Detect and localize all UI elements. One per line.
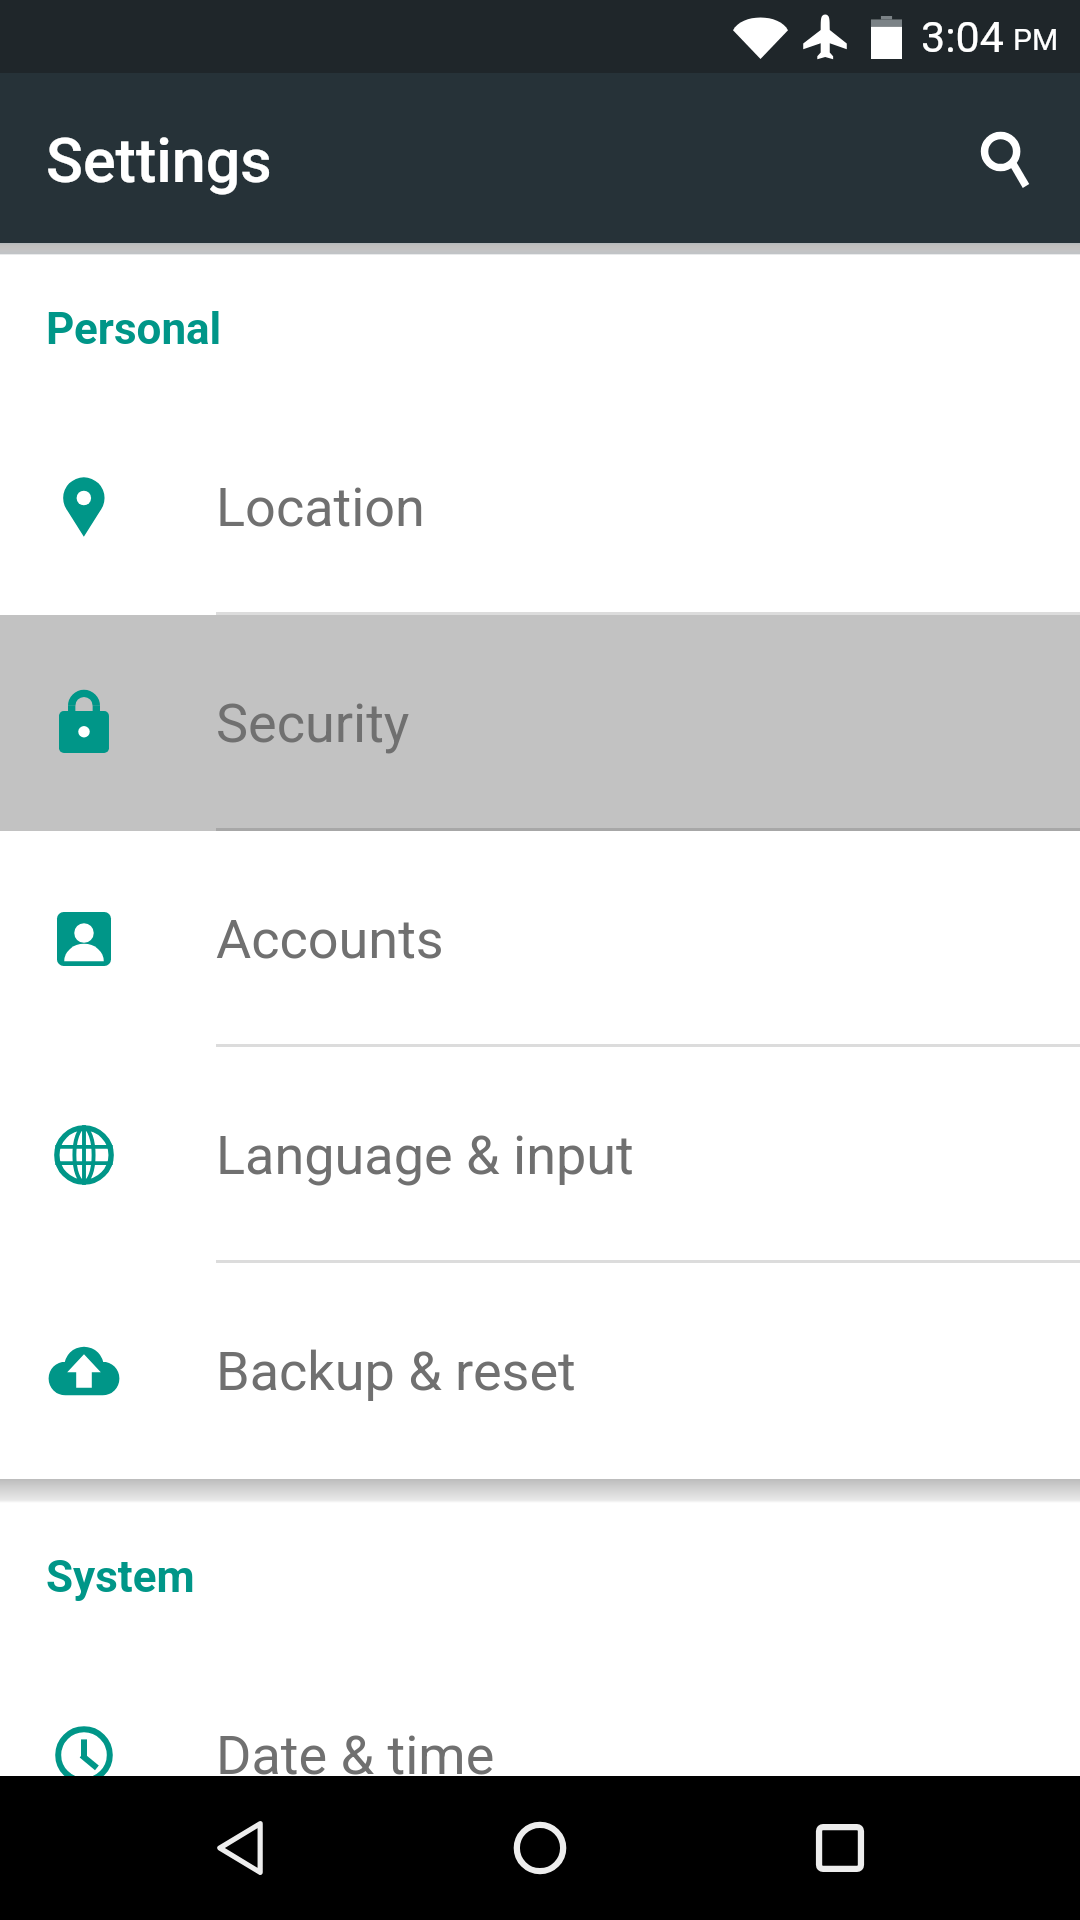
staticText: Accounts [216, 908, 444, 971]
staticText: Personal [46, 303, 222, 355]
button[interactable]: Backup & reset [0, 1263, 1080, 1479]
staticText: 3:04 [921, 12, 1004, 62]
button[interactable]: Accounts [0, 831, 1080, 1047]
staticText: Security [216, 692, 410, 755]
staticText: Backup & reset [216, 1340, 576, 1403]
staticText: Location [216, 476, 425, 539]
button[interactable]: Recent apps [780, 1788, 900, 1908]
button[interactable]: Search [955, 115, 1045, 205]
staticText: Settings [46, 125, 272, 196]
staticText: PM [1013, 22, 1059, 57]
button[interactable]: Home [480, 1788, 600, 1908]
staticText: Date & time [216, 1724, 495, 1787]
staticText: System [46, 1551, 195, 1603]
button[interactable]: Back [180, 1788, 300, 1908]
button[interactable]: Date & time [0, 1647, 1080, 1863]
button[interactable]: Security [0, 615, 1080, 831]
button[interactable]: Language & input [0, 1047, 1080, 1263]
button[interactable]: Location [0, 399, 1080, 615]
staticText: Language & input [216, 1124, 634, 1187]
